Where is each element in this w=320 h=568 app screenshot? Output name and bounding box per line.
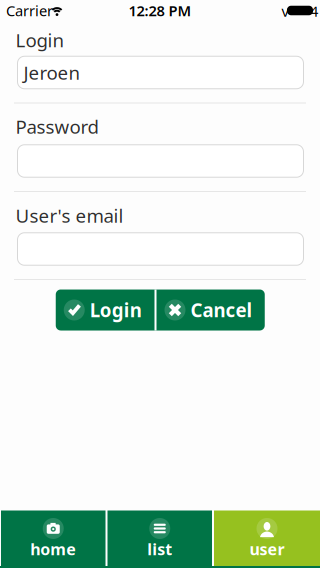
staticText: Password xyxy=(15,114,98,139)
button[interactable]: Login xyxy=(56,289,154,330)
staticText: User's email xyxy=(15,203,123,228)
staticText: Cancel xyxy=(190,298,252,322)
button[interactable]: list xyxy=(107,510,212,566)
staticText: Login xyxy=(90,298,142,322)
staticText: Jeroen xyxy=(23,60,80,85)
button[interactable]: user xyxy=(214,510,320,566)
staticText: user xyxy=(249,538,284,560)
button[interactable]: Cancel xyxy=(156,289,264,330)
staticText: 12:28 PM xyxy=(128,1,191,20)
staticText: home xyxy=(30,538,76,560)
staticText: Login xyxy=(15,28,64,52)
staticText: list xyxy=(147,538,172,560)
button[interactable]: home xyxy=(1,510,105,566)
staticText: Carrier xyxy=(6,1,53,20)
staticText: 4 xyxy=(310,1,318,21)
staticText: v xyxy=(281,1,288,21)
